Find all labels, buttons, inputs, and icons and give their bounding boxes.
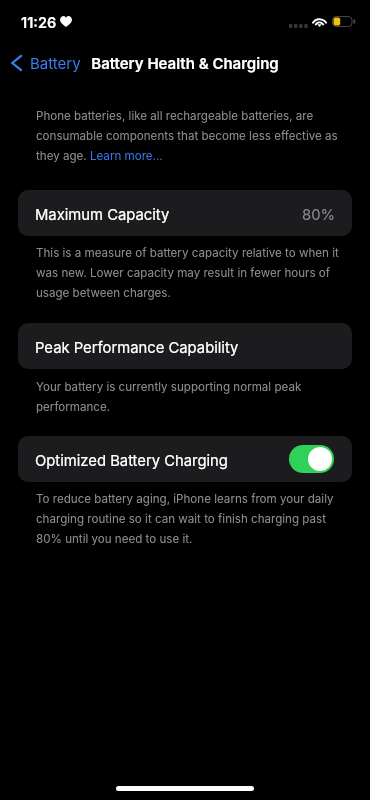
staticText: This is a measure of battery capacity re… [36,246,344,300]
staticText: Optimized Battery Charging [35,452,228,470]
staticText: Phone batteries, like all rechargeable b… [36,109,344,163]
button[interactable]: Battery [6,49,87,77]
staticText: 11:26 [21,14,57,32]
staticText: Peak Performance Capability [35,339,239,357]
button[interactable]: Maximum Capacity [18,190,352,236]
staticText: Maximum Capacity [35,206,170,224]
staticText: To reduce battery aging, iPhone learns f… [36,492,344,546]
button[interactable]: Peak Performance Capability [18,323,352,369]
staticText: Battery [30,54,81,72]
button[interactable]: Optimized Battery Charging toggle [289,445,334,473]
staticText: Your battery is currently supporting nor… [36,380,344,414]
staticText: 80% [302,206,336,224]
button[interactable]: Optimized Battery Charging [18,436,352,482]
staticText: Battery Health & Charging [91,54,279,72]
